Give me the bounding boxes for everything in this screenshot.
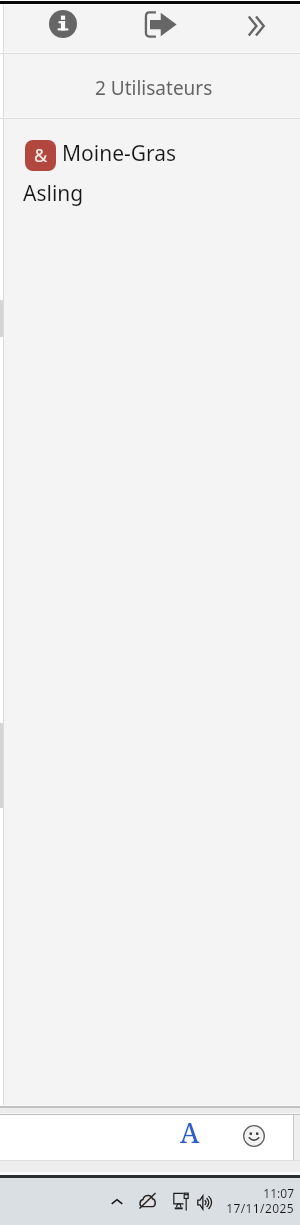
staticText: 2 Utilisateurs — [95, 75, 213, 101]
button[interactable]: Afficher les icônes masquées — [107, 1192, 127, 1212]
button[interactable]: Replier — [238, 6, 278, 46]
staticText: Asling — [23, 179, 84, 208]
button[interactable]: Informations — [43, 4, 83, 44]
staticText: & — [34, 143, 48, 168]
button[interactable]: Date et heure — [218, 1181, 294, 1221]
button[interactable]: Volume — [192, 1190, 216, 1214]
staticText: 11:07 — [218, 1185, 294, 1201]
button[interactable]: Quitter — [138, 4, 178, 44]
staticText: A — [180, 1114, 200, 1150]
staticText: 17/11/2025 — [218, 1200, 294, 1216]
button[interactable]: Police — [172, 1114, 208, 1150]
button[interactable]: Réseau — [169, 1189, 193, 1213]
button[interactable]: OneDrive — [135, 1188, 159, 1212]
staticText: Moine-Gras — [62, 139, 177, 168]
button[interactable]: Emoji — [236, 1118, 272, 1154]
button[interactable]: 2 Utilisateurs — [4, 56, 300, 120]
